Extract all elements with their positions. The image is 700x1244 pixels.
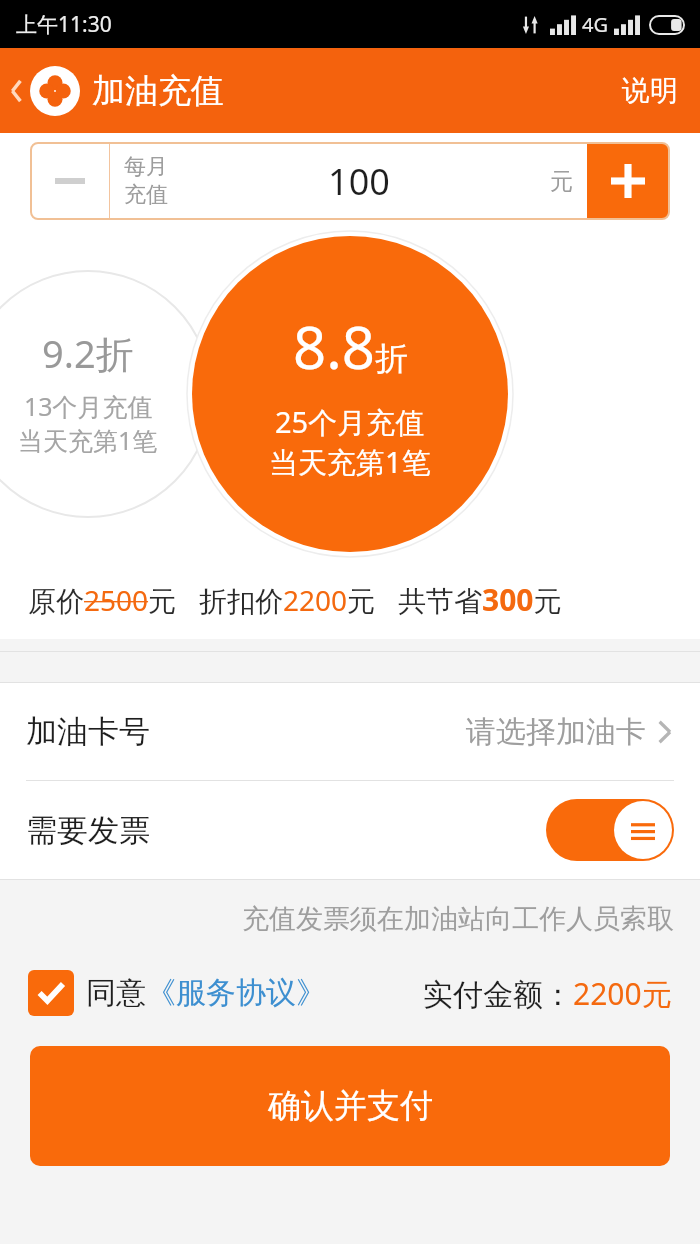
staticText: 折扣价2200元 [199, 581, 376, 619]
staticText: 说明 [622, 73, 678, 108]
staticText: 每月 [124, 153, 168, 181]
staticText: 4G [582, 11, 608, 38]
button[interactable]: Increase amount [587, 143, 669, 219]
button[interactable]: Back [8, 66, 224, 116]
staticText: 折 [375, 338, 408, 380]
staticText: 请选择加油卡 [466, 713, 646, 751]
staticText: 当天充第1笔 [269, 442, 431, 482]
button[interactable]: 每月 [110, 143, 587, 219]
button[interactable]: 说明 [600, 57, 700, 124]
staticText: 实付金额：2200元 [423, 973, 672, 1014]
staticText: 充值 [124, 181, 168, 209]
staticText: 8.8 [293, 307, 375, 386]
staticText: 13个月充值 [24, 389, 153, 423]
staticText: 需要发票 [26, 811, 150, 850]
button[interactable]: 加油卡号 [0, 683, 700, 780]
button[interactable] [31, 143, 109, 219]
button[interactable]: Need invoice toggle, on [546, 799, 674, 861]
staticText: 同意《服务协议》 [86, 974, 326, 1012]
staticText: 9.2折 [42, 327, 134, 379]
button[interactable]: 确认并支付 [30, 1046, 670, 1166]
button[interactable]: 同意《服务协议》 [28, 970, 326, 1016]
staticText: 当天充第1笔 [18, 423, 158, 457]
staticText: 100 [168, 157, 550, 206]
staticText: 元 [550, 167, 573, 196]
staticText: 共节省300元 [398, 579, 562, 620]
staticText: 加油充值 [92, 70, 224, 112]
staticText: 25个月充值 [275, 402, 425, 442]
staticText: 充值发票须在加油站向工作人员索取 [0, 902, 674, 936]
staticText: 原价2500元 [28, 581, 177, 619]
staticText: 确认并支付 [268, 1085, 433, 1127]
staticText: 上午11:30 [16, 10, 112, 39]
staticText: 加油卡号 [26, 712, 150, 751]
